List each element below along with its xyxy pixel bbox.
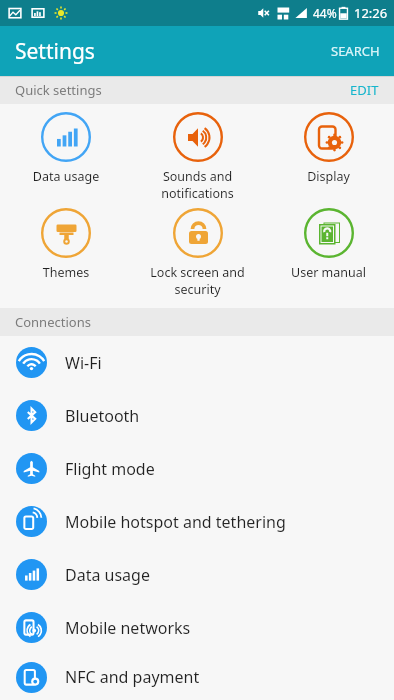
button[interactable]: Mobile hotspot and tethering bbox=[0, 495, 394, 548]
staticText: Mobile hotspot and tethering bbox=[65, 511, 286, 533]
button[interactable]: Mobile networks bbox=[0, 601, 394, 654]
button[interactable]: EDIT bbox=[335, 76, 394, 104]
button[interactable]: Lock screen and security bbox=[132, 200, 263, 308]
staticText: Data usage bbox=[65, 564, 150, 586]
button[interactable]: Bluetooth bbox=[0, 389, 394, 442]
staticText: Connections bbox=[15, 313, 91, 331]
staticText: NFC and payment bbox=[65, 666, 200, 688]
staticText: Display bbox=[267, 168, 390, 185]
staticText: Bluetooth bbox=[65, 405, 140, 427]
button[interactable]: Themes bbox=[0, 200, 132, 308]
button[interactable]: SEARCH bbox=[317, 30, 394, 72]
staticText: Themes bbox=[4, 264, 128, 281]
button[interactable]: Data usage bbox=[0, 104, 132, 200]
staticText: 44% bbox=[313, 5, 337, 21]
staticText: Settings bbox=[15, 37, 95, 66]
staticText: 12:26 bbox=[354, 4, 388, 22]
button[interactable]: NFC and payment bbox=[0, 654, 394, 700]
staticText: Flight mode bbox=[65, 458, 155, 480]
staticText: EDIT bbox=[350, 81, 379, 99]
staticText: Wi-Fi bbox=[65, 352, 102, 374]
button[interactable]: Sounds and notifications bbox=[132, 104, 263, 200]
button[interactable]: Data usage bbox=[0, 548, 394, 601]
button[interactable]: User manual bbox=[263, 200, 394, 308]
staticText: User manual bbox=[267, 264, 390, 281]
staticText: Sounds and notifications bbox=[136, 168, 259, 200]
staticText: SEARCH bbox=[331, 42, 380, 60]
button[interactable]: Flight mode bbox=[0, 442, 394, 495]
staticText: Lock screen and security bbox=[136, 264, 259, 297]
button[interactable]: Wi-Fi bbox=[0, 336, 394, 389]
staticText: Quick settings bbox=[15, 81, 102, 99]
staticText: Data usage bbox=[4, 168, 128, 185]
staticText: Mobile networks bbox=[65, 617, 191, 639]
button[interactable]: Display bbox=[263, 104, 394, 200]
